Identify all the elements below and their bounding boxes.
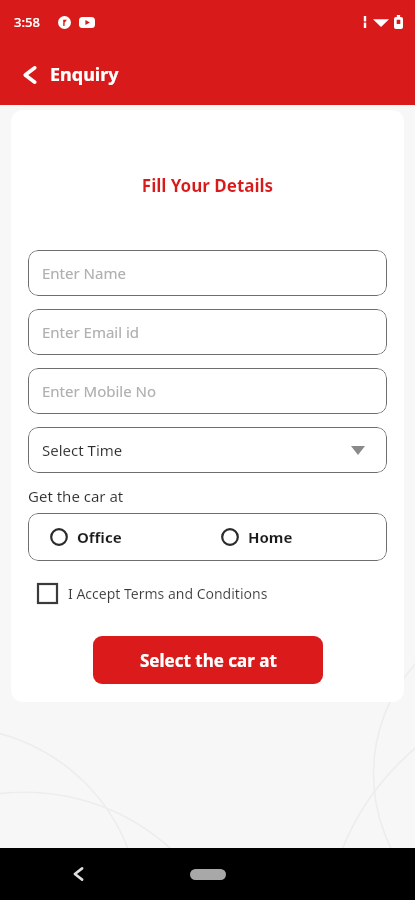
button[interactable]: Home	[221, 527, 387, 547]
button[interactable]: Enter Name	[28, 250, 387, 296]
button[interactable]: Enter Mobile No	[28, 368, 387, 414]
other: Back	[22, 63, 38, 87]
staticText: Office	[77, 527, 122, 547]
button[interactable]: Select the car at	[93, 636, 323, 684]
staticText: Enquiry	[50, 62, 119, 87]
staticText: Enter Email id	[42, 322, 140, 342]
staticText: Enter Name	[42, 263, 126, 283]
staticText: I Accept Terms and Conditions	[68, 584, 268, 603]
button[interactable]: Enter Email id	[28, 309, 387, 355]
staticText: Home	[248, 527, 293, 547]
button[interactable]: Back	[22, 62, 127, 87]
button[interactable]: Home	[190, 869, 226, 880]
button[interactable]: Office	[50, 527, 207, 547]
staticText: Enter Mobile No	[42, 381, 157, 401]
staticText: Select Time	[42, 440, 123, 460]
staticText: Fill Your Details	[11, 174, 404, 197]
staticText: 3:58	[14, 13, 40, 31]
button[interactable]: I Accept Terms and Conditions	[38, 584, 268, 603]
button[interactable]: Select Time	[28, 427, 387, 473]
button[interactable]: Back	[72, 864, 85, 884]
staticText: Select the car at	[140, 649, 277, 672]
staticText: Get the car at	[28, 486, 124, 506]
